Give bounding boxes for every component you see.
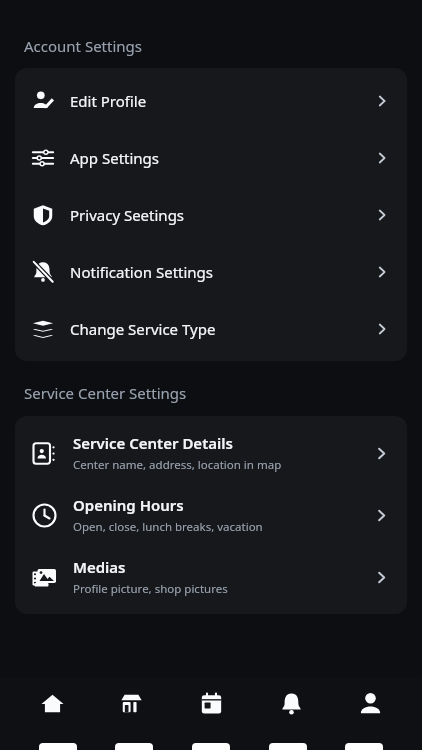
button[interactable]: Medias — [15, 546, 407, 608]
staticText: Opening Hours — [73, 495, 184, 515]
button[interactable]: Profile — [342, 692, 398, 732]
button[interactable]: Shop — [103, 692, 159, 732]
button[interactable]: Opening Hours — [15, 484, 407, 546]
staticText: Profile picture, shop pictures — [73, 581, 228, 597]
staticText: Account Settings — [24, 36, 142, 56]
staticText: App Settings — [70, 148, 374, 168]
staticText: Medias — [73, 557, 126, 577]
button[interactable]: Edit Profile — [15, 72, 407, 129]
button[interactable]: Notifications — [263, 692, 319, 732]
button[interactable]: Home — [24, 692, 80, 732]
button[interactable]: Calendar — [183, 692, 239, 732]
staticText: Service Center Details — [73, 433, 233, 453]
button[interactable]: Change Service Type — [15, 300, 407, 357]
button[interactable]: Privacy Seetings — [15, 186, 407, 243]
staticText: Notification Settings — [70, 262, 374, 282]
button[interactable]: Notification Settings — [15, 243, 407, 300]
staticText: Change Service Type — [70, 319, 374, 339]
staticText: Privacy Seetings — [70, 205, 374, 225]
button[interactable]: Service Center Details — [15, 422, 407, 484]
button[interactable]: App Settings — [15, 129, 407, 186]
staticText: Center name, address, location in map — [73, 457, 282, 473]
staticText: Service Center Settings — [24, 383, 187, 403]
staticText: Open, close, lunch breaks, vacation — [73, 519, 263, 535]
staticText: Edit Profile — [70, 91, 374, 111]
